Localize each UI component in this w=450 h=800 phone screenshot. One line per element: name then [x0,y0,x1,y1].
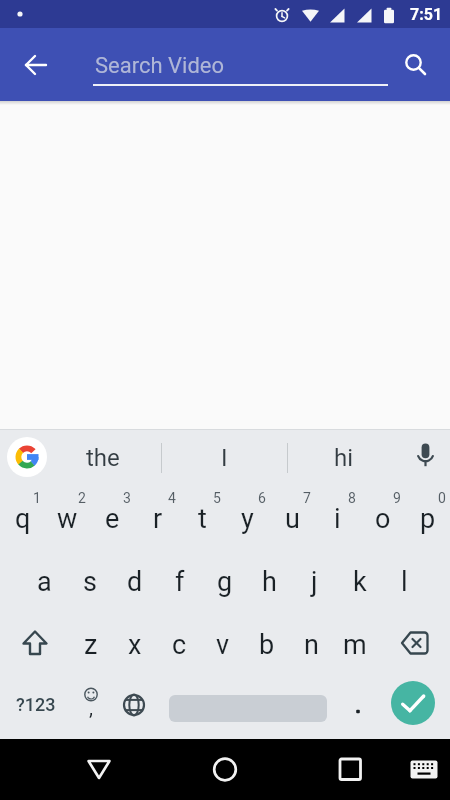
staticText: 7 [303,490,311,506]
button[interactable]: ?123 [0,676,72,739]
button[interactable] [337,676,377,739]
button[interactable]: k [337,550,382,613]
staticText: i [334,503,341,535]
staticText: x [128,629,142,661]
staticText: o [375,503,391,535]
staticText: q [15,503,31,535]
button[interactable] [113,676,153,739]
button[interactable]: i [315,487,360,550]
button[interactable]: n [289,613,333,676]
button[interactable] [377,613,450,676]
staticText: g [217,566,233,598]
staticText: r [153,503,163,535]
staticText: 8 [348,490,356,506]
staticText: a [37,566,52,598]
button[interactable]: c [157,613,201,676]
button[interactable] [402,747,446,791]
button[interactable]: e [90,487,135,550]
staticText: I [221,444,228,472]
staticText: t [198,503,207,535]
staticText: c [172,629,187,661]
button[interactable]: s [67,550,112,613]
staticText: h [262,566,277,598]
staticText: y [241,503,254,535]
staticText: 5 [213,490,221,506]
button[interactable]: r [135,487,180,550]
staticText: u [285,503,300,535]
button[interactable] [411,441,439,469]
button[interactable]: w [45,487,90,550]
button[interactable]: u [270,487,315,550]
button[interactable]: p [405,487,450,550]
staticText: d [127,566,143,598]
staticText: 1 [33,490,41,506]
button[interactable] [22,51,50,79]
button[interactable]: , [74,676,108,739]
button[interactable]: hi [294,429,394,487]
staticText: hi [334,444,354,472]
staticText: b [259,629,275,661]
button[interactable] [7,437,47,477]
button[interactable]: b [245,613,289,676]
staticText: 6 [258,490,266,506]
staticText: Search Video [95,53,225,79]
button[interactable]: l [382,550,427,613]
staticText: e [105,503,120,535]
button[interactable]: g [202,550,247,613]
button[interactable] [391,681,435,725]
staticText: k [353,566,367,598]
staticText: z [84,629,98,661]
staticText: 9 [393,490,401,506]
button[interactable]: v [201,613,245,676]
button[interactable]: f [157,550,202,613]
staticText: v [216,629,230,661]
button[interactable]: x [113,613,157,676]
staticText: j [311,566,318,598]
button[interactable]: y [225,487,270,550]
staticText: the [86,444,120,472]
button[interactable] [203,747,247,791]
button[interactable]: I [174,429,274,487]
button[interactable] [0,613,66,676]
staticText: 2 [78,490,86,506]
button[interactable]: d [112,550,157,613]
button[interactable]: q [0,487,45,550]
button[interactable]: t [180,487,225,550]
button[interactable]: m [333,613,377,676]
button[interactable]: z [69,613,113,676]
button[interactable] [328,747,372,791]
button[interactable]: j [292,550,337,613]
staticText: 7:51 [410,5,443,24]
button[interactable]: a [22,550,67,613]
staticText: n [304,629,319,661]
staticText: ?123 [16,694,56,715]
staticText: s [83,566,97,598]
staticText: 4 [168,490,176,506]
staticText: , [89,696,93,719]
staticText: p [420,503,436,535]
button[interactable]: the [53,429,153,487]
button[interactable]: o [360,487,405,550]
staticText: w [57,503,78,535]
button[interactable] [77,747,121,791]
staticText: m [343,629,367,661]
staticText: 0 [438,490,446,506]
staticText: f [175,566,185,598]
staticText: 3 [123,490,131,506]
staticText: l [401,566,408,598]
button[interactable]: h [247,550,292,613]
button[interactable] [403,52,429,78]
